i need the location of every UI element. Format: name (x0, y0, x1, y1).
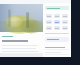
button[interactable]: Option 5 (54, 20, 60, 24)
button[interactable]: Header (43, 3, 71, 58)
button[interactable]: Option 9 (62, 26, 68, 30)
button[interactable]: Item 2 (45, 50, 69, 54)
button[interactable]: Item 1 (45, 45, 69, 49)
button[interactable]: Option 8 (54, 26, 60, 30)
button[interactable]: Header (45, 6, 69, 10)
button[interactable]: Option 2 (54, 14, 60, 18)
button[interactable]: Option 6 (62, 20, 68, 24)
button[interactable] (0, 4, 45, 53)
button[interactable]: Option 3 (62, 14, 68, 18)
button[interactable]: Search (45, 37, 69, 42)
button[interactable]: Option 1 (46, 14, 52, 18)
button[interactable]: Option 4 (46, 20, 52, 24)
button[interactable]: Option 7 (46, 26, 52, 30)
